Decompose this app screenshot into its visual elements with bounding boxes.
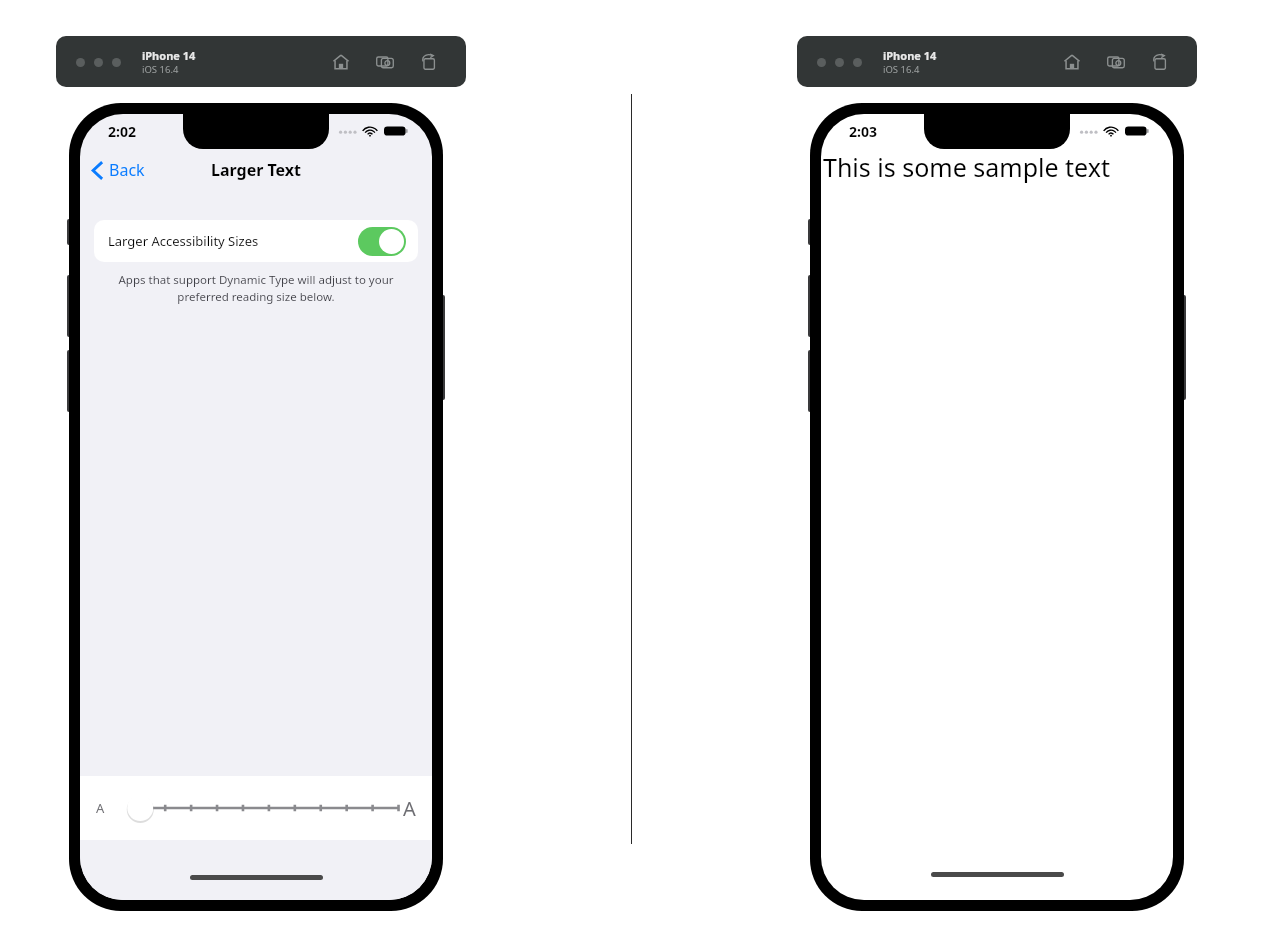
button[interactable]: Window control xyxy=(817,58,826,67)
button[interactable]: Screenshot xyxy=(374,51,396,73)
button[interactable]: Larger Accessibility Sizes toggle xyxy=(358,227,406,256)
staticText: A xyxy=(96,799,105,817)
staticText: 2:03 xyxy=(849,122,877,141)
button[interactable]: Window control xyxy=(94,58,103,67)
button[interactable]: Screenshot xyxy=(1105,51,1127,73)
staticText: Back xyxy=(109,159,145,181)
staticText: 2:02 xyxy=(108,122,136,141)
button[interactable]: Rotate xyxy=(1149,51,1171,73)
button[interactable]: Larger Accessibility Sizes xyxy=(94,220,418,262)
staticText: iOS 16.4 xyxy=(883,63,920,76)
button[interactable]: Text size slider xyxy=(105,788,403,828)
button[interactable]: Window control xyxy=(853,58,862,67)
staticText: Apps that support Dynamic Type will adju… xyxy=(110,272,402,304)
staticText: Larger Text xyxy=(211,159,302,181)
button[interactable]: Home xyxy=(1061,51,1083,73)
staticText: This is some sample text xyxy=(823,150,1110,184)
staticText: iPhone 14 xyxy=(142,48,196,63)
button[interactable]: Window control xyxy=(835,58,844,67)
staticText: A xyxy=(403,795,416,822)
button[interactable]: Home xyxy=(330,51,352,73)
staticText: iOS 16.4 xyxy=(142,63,179,76)
staticText: iPhone 14 xyxy=(883,48,937,63)
staticText: Larger Accessibility Sizes xyxy=(108,232,259,250)
button[interactable]: Back xyxy=(80,153,157,187)
button[interactable]: Window control xyxy=(76,58,85,67)
button[interactable]: Window control xyxy=(112,58,121,67)
button[interactable]: Rotate xyxy=(418,51,440,73)
